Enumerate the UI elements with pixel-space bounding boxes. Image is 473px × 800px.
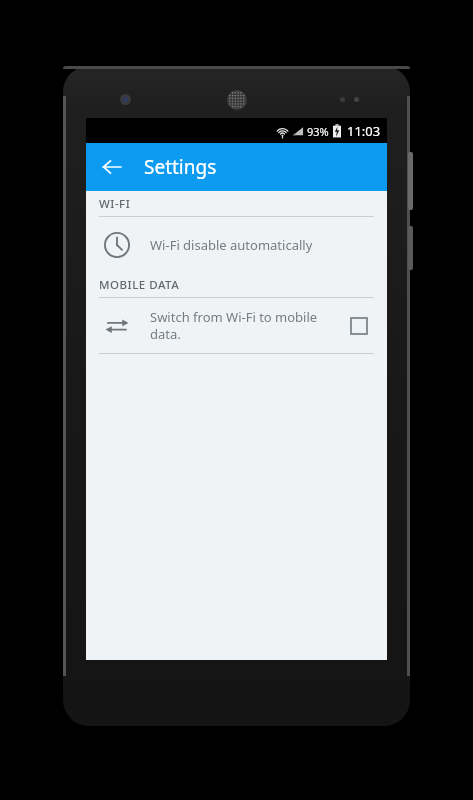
staticText: 11:03 — [347, 122, 381, 140]
staticText: Switch from Wi-Fi to mobile data. — [150, 308, 344, 343]
button[interactable]: Wi-Fi disable automatically — [86, 217, 387, 272]
staticText: WI-FI — [99, 196, 131, 212]
staticText: Settings — [144, 154, 217, 180]
button[interactable]: Switch from Wi-Fi to mobile data. — [86, 298, 387, 353]
staticText: 93% — [307, 124, 329, 139]
staticText: MOBILE DATA — [99, 277, 180, 293]
staticText: Wi-Fi disable automatically — [150, 236, 374, 254]
button[interactable]: Back — [94, 149, 130, 185]
button[interactable]: Toggle switch from Wi-Fi to mobile data — [344, 311, 374, 341]
